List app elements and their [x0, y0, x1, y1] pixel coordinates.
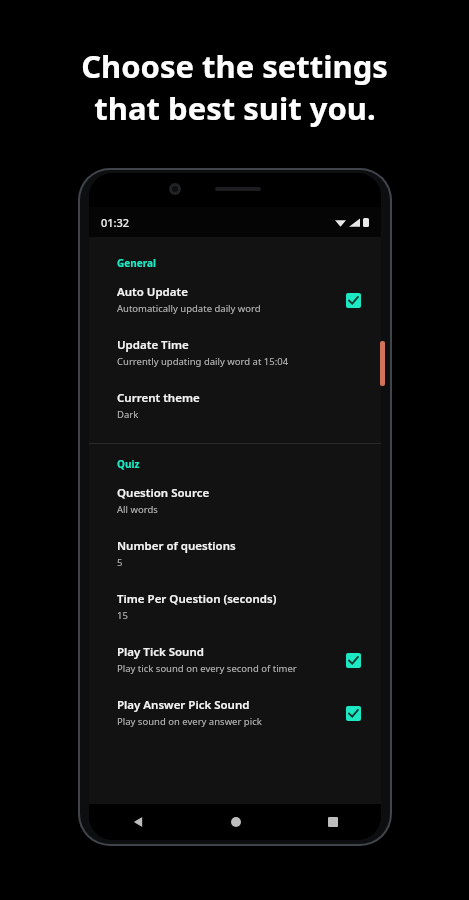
button[interactable]: Number of questions	[89, 527, 381, 580]
staticText: 01:32	[101, 215, 130, 230]
staticText: Choose the settings	[81, 45, 388, 87]
button[interactable]: Update Time	[89, 326, 381, 379]
staticText: Quiz	[117, 457, 140, 471]
button[interactable]: Recent apps	[284, 804, 381, 840]
staticText: Auto Update	[117, 284, 188, 300]
staticText: Play Answer Pick Sound	[117, 697, 250, 713]
staticText: General	[117, 256, 156, 270]
button[interactable]: Back	[89, 804, 187, 840]
staticText: Current theme	[117, 390, 200, 406]
staticText: that best suit you.	[94, 87, 376, 129]
staticText: Currently updating daily word at 15:04	[117, 355, 289, 368]
staticText: Automatically update daily word	[117, 302, 261, 315]
staticText: All words	[117, 503, 158, 516]
button[interactable]: Current theme	[89, 379, 381, 432]
staticText: 5	[117, 556, 123, 569]
staticText: Play sound on every answer pick	[117, 715, 262, 728]
button[interactable]: Toggle Play Tick Sound	[341, 648, 365, 672]
button[interactable]: Toggle Play Answer Pick Sound	[341, 701, 365, 725]
button[interactable]: Auto Update	[89, 273, 381, 326]
staticText: Play Tick Sound	[117, 644, 204, 660]
button[interactable]: Home	[187, 804, 284, 840]
staticText: 15	[117, 609, 128, 622]
button[interactable]: Question Source	[89, 474, 381, 527]
button[interactable]: Toggle Auto Update	[341, 288, 365, 312]
button[interactable]: Play Tick Sound	[89, 633, 381, 686]
button[interactable]: Time Per Question (seconds)	[89, 580, 381, 633]
staticText: Question Source	[117, 485, 210, 501]
staticText: Time Per Question (seconds)	[117, 591, 277, 607]
staticText: Update Time	[117, 337, 189, 353]
button[interactable]: Play Answer Pick Sound	[89, 686, 381, 739]
staticText: Play tick sound on every second of timer	[117, 662, 297, 675]
staticText: Number of questions	[117, 538, 236, 554]
staticText: Dark	[117, 408, 139, 421]
